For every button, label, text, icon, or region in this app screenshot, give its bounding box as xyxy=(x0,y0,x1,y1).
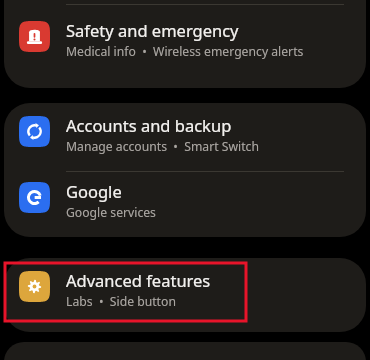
staticText: Google services xyxy=(66,204,156,221)
staticText: Advanced features xyxy=(66,269,211,291)
staticText: Manage accounts • Smart Switch xyxy=(66,138,259,155)
button[interactable]: Safety and emergency xyxy=(4,5,366,85)
staticText: Safety and emergency xyxy=(66,19,239,41)
staticText: Labs • Side button xyxy=(66,293,176,310)
button[interactable]: Google xyxy=(4,172,366,234)
staticText: Medical info • Wireless emergency alerts xyxy=(66,43,304,60)
button[interactable]: Advanced features xyxy=(4,262,366,326)
other: Advanced features highlight xyxy=(0,0,370,360)
button[interactable]: Accounts and backup xyxy=(4,107,366,171)
staticText: Accounts and backup xyxy=(66,114,232,136)
staticText: Google xyxy=(66,180,122,202)
